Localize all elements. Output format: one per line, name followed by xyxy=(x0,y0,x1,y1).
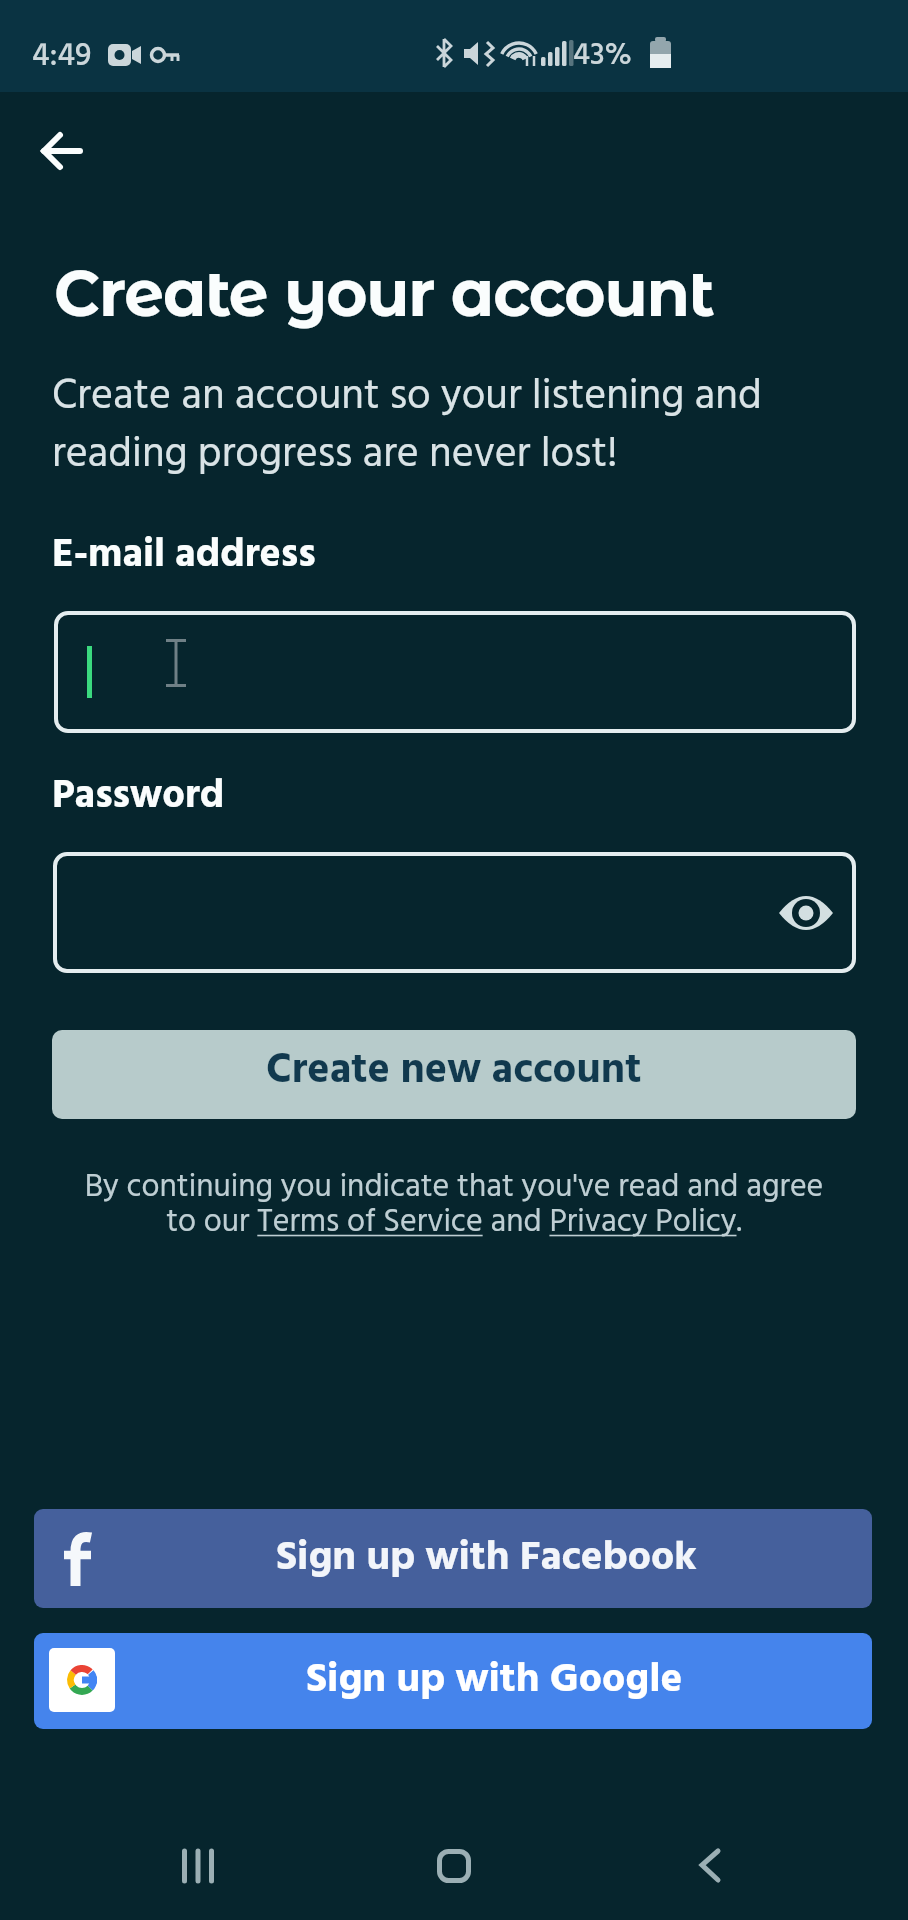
staticText: Create an account so your listening and … xyxy=(52,364,762,488)
button[interactable]: Create new account xyxy=(52,1030,856,1119)
button[interactable] xyxy=(160,1838,240,1894)
staticText: By continuing you indicate that you've r… xyxy=(0,1162,908,1249)
button[interactable]: Sign up with Google xyxy=(34,1633,872,1729)
button[interactable] xyxy=(30,122,94,186)
button[interactable]: Sign up with Facebook xyxy=(34,1509,872,1608)
staticText: 4:49 xyxy=(32,31,92,82)
button[interactable] xyxy=(414,1838,494,1894)
button[interactable] xyxy=(756,852,856,973)
staticText: 43% xyxy=(573,31,632,81)
button[interactable] xyxy=(53,852,856,973)
button[interactable] xyxy=(549,1203,734,1247)
button[interactable] xyxy=(670,1838,750,1894)
staticText: Sign up with Facebook xyxy=(276,1526,697,1592)
staticText: Sign up with Google xyxy=(306,1648,683,1714)
staticText: Create new account xyxy=(266,1038,642,1105)
button[interactable] xyxy=(224,1203,480,1247)
staticText: Password xyxy=(52,765,225,829)
staticText: E-mail address xyxy=(52,524,316,588)
button[interactable] xyxy=(54,611,856,733)
staticText: Create your account xyxy=(54,255,714,332)
